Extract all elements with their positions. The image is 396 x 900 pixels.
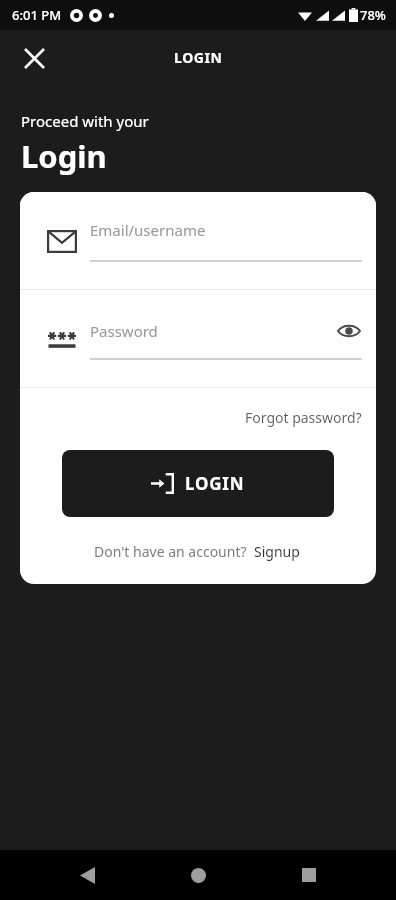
- staticText: Password: [90, 321, 336, 341]
- staticText: LOGIN: [185, 472, 245, 495]
- button[interactable]: Recents: [285, 851, 333, 899]
- staticText: LOGIN: [174, 48, 223, 67]
- button[interactable]: Back: [63, 851, 111, 899]
- staticText: Login: [21, 135, 107, 177]
- staticText: Don't have an account?: [94, 542, 247, 561]
- button[interactable]: Forgot password?: [231, 402, 376, 433]
- button[interactable]: Show password: [336, 318, 362, 344]
- staticText: Email/username: [90, 220, 206, 240]
- button[interactable]: Home: [174, 851, 222, 899]
- staticText: 6:01 PM: [12, 6, 62, 24]
- staticText: 78%: [360, 6, 386, 24]
- button[interactable]: Email/username: [20, 192, 376, 289]
- staticText: Proceed with your: [21, 111, 149, 131]
- staticText: Forgot password?: [245, 408, 362, 427]
- button[interactable]: Signup: [247, 539, 302, 564]
- button[interactable]: Close: [12, 36, 56, 80]
- button[interactable]: LOGIN: [62, 450, 334, 517]
- button[interactable]: Password: [20, 290, 376, 387]
- staticText: Signup: [254, 542, 300, 561]
